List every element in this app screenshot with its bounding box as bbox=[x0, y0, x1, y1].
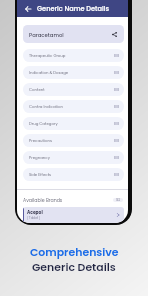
button[interactable]: Precautions bbox=[23, 134, 124, 147]
button[interactable]: Pregnancy bbox=[23, 151, 124, 164]
button[interactable]: Drug Category bbox=[23, 117, 124, 130]
staticText: ( Tablet ) bbox=[27, 216, 41, 220]
button[interactable]: Indication & Dosage bbox=[23, 66, 124, 79]
staticText: Indication & Dosage bbox=[29, 70, 69, 75]
button[interactable]: Therapeutic Group bbox=[23, 49, 124, 62]
staticText: Precautions bbox=[29, 138, 52, 143]
button[interactable]: Back bbox=[21, 2, 34, 15]
button[interactable]: Content bbox=[23, 83, 124, 96]
staticText: Comprehensive bbox=[30, 245, 119, 260]
button[interactable]: Paracetamol bbox=[23, 25, 124, 43]
button[interactable]: Acepol bbox=[23, 207, 124, 223]
staticText: Pregnancy bbox=[29, 155, 50, 160]
staticText: Contra Indication bbox=[29, 104, 63, 109]
staticText: Content bbox=[29, 87, 45, 92]
staticText: Available Brands bbox=[23, 197, 63, 204]
staticText: Acepol bbox=[27, 209, 43, 215]
staticText: Generic Name Details bbox=[37, 4, 109, 13]
staticText: Generic Details bbox=[32, 260, 116, 275]
button[interactable]: Contra Indication bbox=[23, 100, 124, 113]
button[interactable]: Side Effects bbox=[23, 168, 124, 181]
staticText: Therapeutic Group bbox=[29, 53, 66, 58]
staticText: Side Effects bbox=[29, 172, 52, 177]
staticText: Drug Category bbox=[29, 121, 58, 126]
staticText: Paracetamol bbox=[29, 31, 64, 38]
staticText: 142 bbox=[116, 198, 121, 202]
